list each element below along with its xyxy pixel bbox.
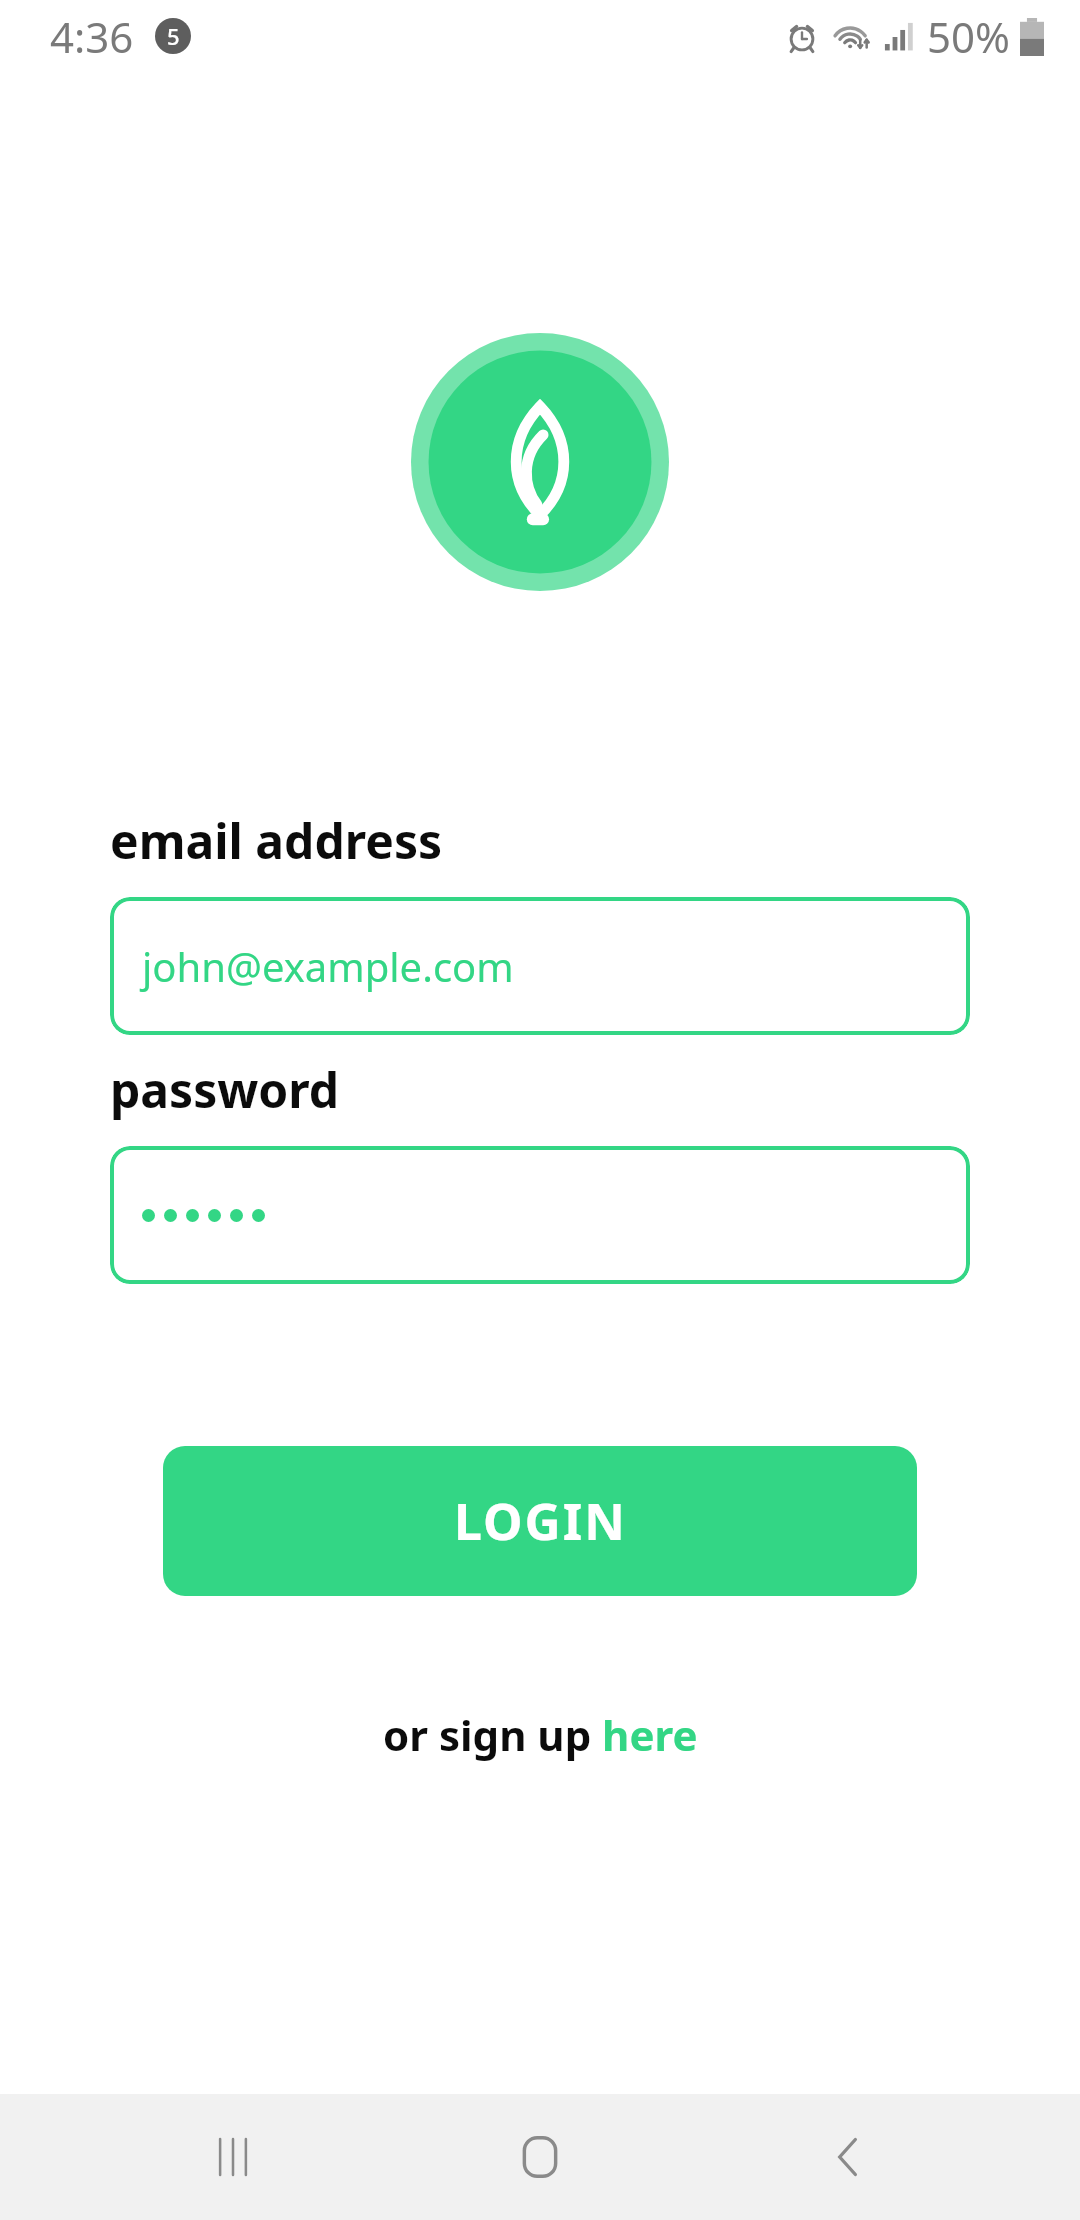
- button[interactable]: or sign up here: [373, 1700, 708, 1769]
- button[interactable]: Home: [465, 2094, 615, 2220]
- button[interactable]: Recent apps: [158, 2094, 308, 2220]
- button[interactable]: LOGIN: [163, 1446, 917, 1596]
- staticText: john@example.com: [142, 939, 514, 993]
- button[interactable]: john@example.com: [110, 897, 970, 1035]
- staticText: LOGIN: [454, 1487, 627, 1555]
- staticText: 5: [167, 21, 180, 51]
- staticText: 4:36: [50, 8, 134, 65]
- staticText: or sign up here: [383, 1706, 698, 1763]
- button[interactable]: [110, 1146, 970, 1284]
- staticText: 50%: [927, 8, 1010, 65]
- button[interactable]: Back: [773, 2094, 923, 2220]
- staticText: password: [110, 1057, 340, 1122]
- staticText: email address: [110, 808, 443, 873]
